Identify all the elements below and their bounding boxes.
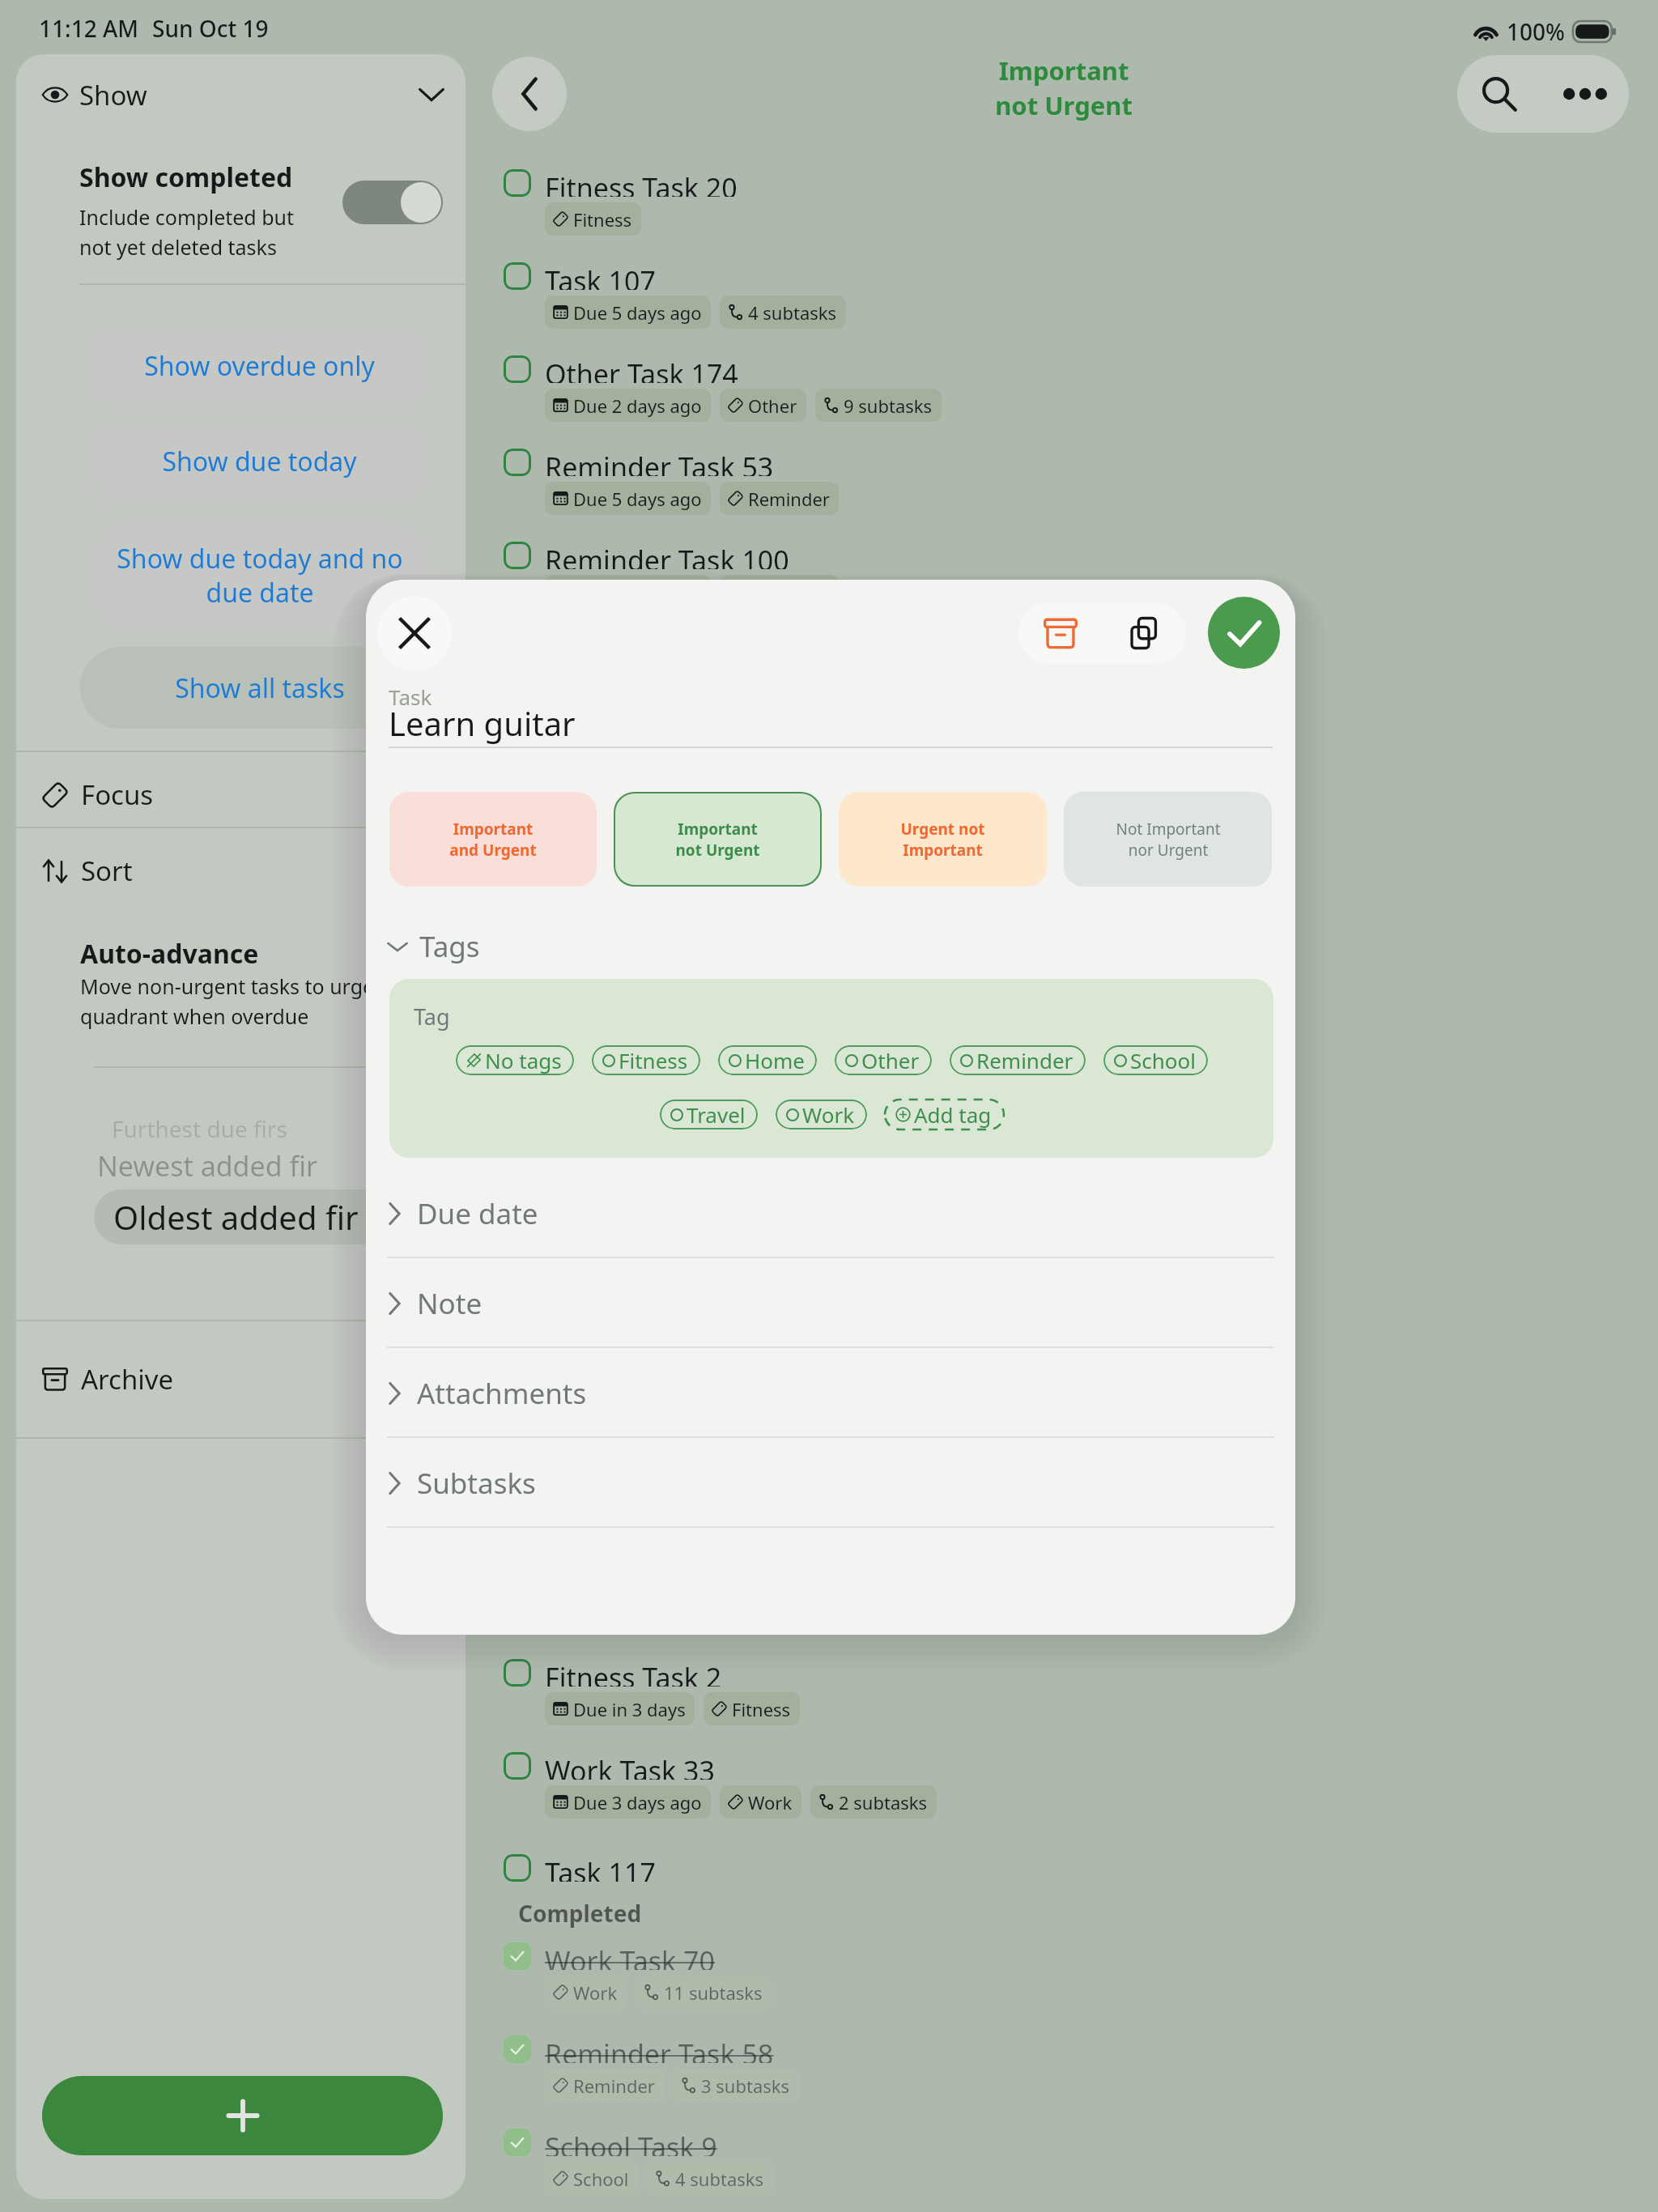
- button[interactable]: Show all tasks: [80, 647, 439, 729]
- button[interactable]: Reminder Task 58: [504, 2025, 1653, 2118]
- button[interactable]: 4 subtasks: [647, 2162, 773, 2195]
- button[interactable]: Travel Task 12: [504, 810, 1653, 904]
- button[interactable]: Add tag: [885, 1100, 1004, 1129]
- button[interactable]: Tags: [387, 923, 480, 970]
- button[interactable]: School: [545, 2162, 638, 2195]
- button[interactable]: Fitness Task 2: [504, 1648, 1653, 1742]
- button[interactable]: Show: [16, 54, 466, 135]
- button[interactable]: Not Important nor Urgent: [1064, 792, 1272, 887]
- button[interactable]: Due 7 days ago: [545, 1040, 711, 1074]
- button[interactable]: Fitness: [704, 1692, 800, 1725]
- button[interactable]: Other Task 174: [504, 345, 1653, 438]
- button[interactable]: No tags: [456, 1045, 574, 1075]
- button[interactable]: Duplicate: [1103, 602, 1186, 664]
- button[interactable]: 9 subtasks: [815, 389, 942, 422]
- button[interactable]: 2 subtasks: [810, 1785, 937, 1819]
- button[interactable]: Save: [1208, 597, 1280, 669]
- button[interactable]: Reminder: [950, 1045, 1086, 1075]
- button[interactable]: Task 88: [504, 717, 1653, 810]
- button[interactable]: 5 subtasks: [720, 1040, 846, 1074]
- button[interactable]: Important not Urgent: [614, 792, 822, 887]
- button[interactable]: Reminder: [720, 575, 839, 608]
- button[interactable]: Archive: [16, 1321, 466, 1437]
- button[interactable]: Work Task 33: [504, 1742, 1653, 1835]
- button[interactable]: Search: [1457, 55, 1541, 133]
- button[interactable]: Other Task 91: [504, 1183, 1653, 1276]
- button[interactable]: Other: [720, 389, 806, 422]
- button[interactable]: Fitness: [545, 202, 641, 236]
- button[interactable]: Due in 3 days: [545, 1692, 695, 1725]
- button[interactable]: Urgent not Important: [839, 792, 1047, 887]
- button[interactable]: Due 4 days ago: [545, 761, 711, 794]
- button[interactable]: Reminder: [545, 2069, 664, 2102]
- button[interactable]: Due 11 days ago: [545, 1506, 721, 1539]
- button[interactable]: Due 5 days ago: [545, 482, 711, 515]
- button[interactable]: Task 19: [504, 997, 1653, 1090]
- button[interactable]: Reminder: [720, 482, 839, 515]
- button[interactable]: Fitness Task 20: [504, 159, 1653, 252]
- button[interactable]: Task 117: [504, 1835, 1653, 1889]
- button[interactable]: School: [730, 1506, 823, 1539]
- button[interactable]: Travel: [545, 854, 632, 887]
- button[interactable]: Work: [720, 1134, 801, 1167]
- button[interactable]: School Task 60: [504, 904, 1653, 997]
- button[interactable]: Due 9 days ago: [545, 1320, 711, 1353]
- button[interactable]: School: [1103, 1045, 1208, 1075]
- button[interactable]: Home: [720, 1320, 808, 1353]
- button[interactable]: Note: [366, 1258, 1295, 1348]
- button[interactable]: Subtasks: [366, 1438, 1295, 1528]
- button[interactable]: Home Task 7: [504, 1276, 1653, 1369]
- button[interactable]: Due 10 days ago: [545, 1413, 721, 1446]
- button[interactable]: Due date: [366, 1168, 1295, 1258]
- button[interactable]: 2 subtasks: [730, 1413, 857, 1446]
- button[interactable]: Work: [545, 1976, 627, 2009]
- button[interactable]: Other: [835, 1045, 932, 1075]
- button[interactable]: Archive: [1018, 602, 1103, 664]
- button[interactable]: Show completed toggle: [342, 181, 443, 224]
- button[interactable]: Show due today: [80, 423, 439, 500]
- button[interactable]: Due 6 days ago: [545, 1134, 711, 1167]
- button[interactable]: Reminder Task 100: [504, 531, 1653, 624]
- button[interactable]: Show completed: [16, 135, 466, 287]
- button[interactable]: Due 2 days ago: [545, 947, 711, 981]
- button[interactable]: School Task 9: [504, 2118, 1653, 2211]
- button[interactable]: Work: [776, 1100, 867, 1129]
- button[interactable]: Work Task 70: [504, 1932, 1653, 2025]
- button[interactable]: 11 subtasks: [636, 1976, 772, 2009]
- button[interactable]: Due 3 days ago: [545, 1785, 711, 1819]
- button[interactable]: Important and Urgent: [389, 792, 597, 887]
- button[interactable]: Focus: [16, 757, 466, 832]
- button[interactable]: 3 subtasks: [720, 761, 846, 794]
- button[interactable]: Work Task 5: [504, 1090, 1653, 1183]
- button[interactable]: Show overdue only: [80, 326, 439, 406]
- button[interactable]: Due 8 days ago: [545, 1227, 711, 1260]
- button[interactable]: Task 107: [504, 252, 1653, 345]
- button[interactable]: Close: [377, 596, 452, 670]
- button[interactable]: Travel: [660, 1100, 758, 1129]
- button[interactable]: Work Task 14: [504, 1555, 1653, 1648]
- button[interactable]: Due 2 days ago: [545, 389, 711, 422]
- button[interactable]: Fitness: [592, 1045, 700, 1075]
- button[interactable]: 6 subtasks: [815, 1227, 942, 1260]
- button[interactable]: Due 5 days ago: [545, 296, 711, 329]
- button[interactable]: 3 subtasks: [673, 2069, 799, 2102]
- button[interactable]: Other: [720, 1227, 806, 1260]
- button[interactable]: Work: [720, 1785, 801, 1819]
- button[interactable]: School: [720, 947, 813, 981]
- button[interactable]: Back: [492, 57, 567, 131]
- button[interactable]: School Task 22: [504, 1462, 1653, 1555]
- button[interactable]: Add task: [42, 2076, 443, 2155]
- button[interactable]: Sort: [16, 832, 466, 909]
- button[interactable]: Task 63: [504, 1369, 1653, 1462]
- button[interactable]: Reminder Task 53: [504, 438, 1653, 531]
- button[interactable]: Home: [718, 1045, 817, 1075]
- button[interactable]: Attachments: [366, 1348, 1295, 1438]
- button[interactable]: 4 subtasks: [720, 296, 846, 329]
- button[interactable]: Oldest added fir: [94, 1189, 450, 1244]
- button[interactable]: Due 5 days ago: [545, 575, 711, 608]
